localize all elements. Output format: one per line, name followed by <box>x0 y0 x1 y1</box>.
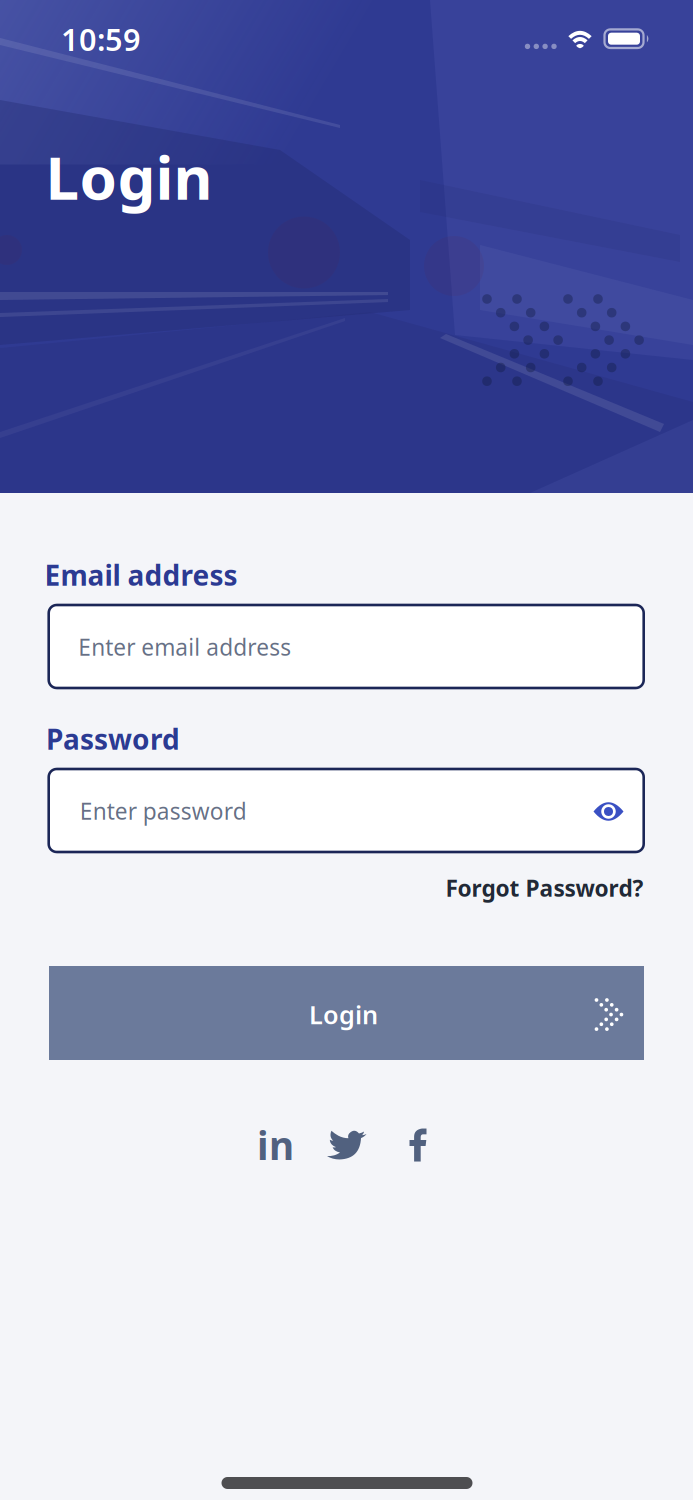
staticText: in <box>257 1119 294 1171</box>
button[interactable]: LinkedIn <box>257 1119 294 1171</box>
staticText: 10:59 <box>61 19 141 59</box>
staticText: Login <box>309 998 378 1031</box>
staticText: Login <box>45 137 212 216</box>
staticText: Email address <box>44 556 237 594</box>
button[interactable]: Login <box>49 966 644 1060</box>
button[interactable]: Show password <box>593 801 623 821</box>
button[interactable]: Twitter <box>327 1128 366 1159</box>
textField[interactable]: Enter password <box>49 769 644 852</box>
button[interactable]: Facebook <box>409 1128 426 1161</box>
textField[interactable]: Enter email address <box>49 605 644 688</box>
staticText: Enter password <box>80 796 247 826</box>
staticText: Forgot Password? <box>445 873 643 903</box>
staticText: Enter email address <box>78 632 291 662</box>
button[interactable]: Forgot Password? <box>445 873 643 903</box>
staticText: Password <box>46 720 180 758</box>
